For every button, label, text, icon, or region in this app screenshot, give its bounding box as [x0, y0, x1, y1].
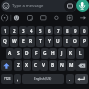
button[interactable]: Type a message: [12, 0, 62, 12]
button[interactable]: ?123: [1, 74, 13, 84]
button[interactable]: 7: [54, 26, 62, 35]
button[interactable]: Z: [14, 60, 22, 71]
staticText: English (US): [34, 77, 52, 81]
button[interactable]: [51, 13, 61, 23]
staticText: B: [51, 62, 55, 69]
staticText: S: [17, 50, 20, 57]
staticText: 4: [30, 28, 33, 34]
staticText: ?123: [4, 77, 11, 81]
staticText: 1: [4, 28, 7, 34]
button[interactable]: [64, 0, 76, 12]
button[interactable]: O: [71, 36, 79, 47]
button[interactable]: 1: [1, 26, 9, 35]
staticText: 2: [13, 28, 16, 34]
button[interactable]: Y: [45, 36, 53, 47]
button[interactable]: [38, 13, 48, 23]
button[interactable]: [0, 13, 10, 23]
button[interactable]: 9: [71, 26, 79, 35]
staticText: C: [34, 62, 38, 69]
button[interactable]: P: [80, 36, 88, 47]
button[interactable]: ,: [14, 74, 21, 84]
staticText: O: [73, 38, 77, 45]
staticText: K: [69, 50, 73, 57]
staticText: D: [25, 50, 29, 57]
button[interactable]: Q: [1, 36, 9, 47]
staticText: Y: [48, 38, 51, 45]
button[interactable]: C: [32, 60, 40, 71]
button[interactable]: 4: [27, 26, 35, 35]
button[interactable]: U: [54, 36, 62, 47]
staticText: N: [60, 62, 64, 69]
button[interactable]: N: [58, 60, 66, 71]
button[interactable]: G: [41, 48, 49, 59]
button[interactable]: 2: [10, 26, 18, 35]
staticText: R: [29, 38, 33, 45]
button[interactable]: V: [40, 60, 48, 71]
staticText: ,: [17, 76, 19, 82]
button[interactable]: T: [36, 36, 44, 47]
staticText: T: [39, 38, 42, 45]
button[interactable]: L: [76, 48, 84, 59]
staticText: F: [35, 50, 38, 57]
staticText: Z: [17, 62, 20, 69]
button[interactable]: A: [6, 48, 14, 59]
staticText: W: [12, 38, 17, 45]
button[interactable]: 5: [36, 26, 44, 35]
staticText: 5: [39, 28, 42, 34]
button[interactable]: [78, 13, 88, 23]
staticText: Type a message: [12, 3, 44, 9]
button[interactable]: K: [67, 48, 75, 59]
staticText: A: [8, 50, 12, 57]
button[interactable]: B: [49, 60, 57, 71]
staticText: J: [61, 50, 63, 57]
staticText: 0: [83, 28, 86, 34]
staticText: 6: [48, 28, 51, 34]
button[interactable]: 0: [80, 26, 88, 35]
button[interactable]: J: [58, 48, 66, 59]
button[interactable]: W: [10, 36, 18, 47]
staticText: 8: [66, 28, 69, 34]
button[interactable]: S: [14, 48, 22, 59]
button[interactable]: .: [66, 74, 74, 84]
staticText: G: [43, 50, 47, 57]
staticText: X: [25, 62, 29, 69]
button[interactable]: [1, 0, 77, 12]
staticText: E: [22, 38, 25, 45]
button[interactable]: [12, 13, 22, 23]
button[interactable]: [75, 60, 87, 71]
button[interactable]: [76, 0, 89, 12]
staticText: .: [69, 76, 71, 82]
button[interactable]: 3: [19, 26, 27, 35]
staticText: V: [42, 62, 46, 69]
button[interactable]: 8: [63, 26, 71, 35]
staticText: I: [66, 38, 68, 45]
button[interactable]: M: [67, 60, 75, 71]
staticText: 9: [74, 28, 77, 34]
button[interactable]: [1, 60, 12, 71]
staticText: P: [83, 38, 86, 45]
staticText: M: [69, 62, 74, 69]
staticText: Q: [3, 38, 7, 45]
button[interactable]: R: [27, 36, 35, 47]
button[interactable]: H: [49, 48, 57, 59]
button[interactable]: [75, 74, 88, 84]
button[interactable]: [65, 13, 75, 23]
button[interactable]: E: [19, 36, 27, 47]
button[interactable]: 6: [45, 26, 53, 35]
button[interactable]: English (US): [22, 74, 64, 84]
button[interactable]: I: [63, 36, 71, 47]
staticText: H: [51, 50, 55, 57]
button[interactable]: X: [23, 60, 31, 71]
staticText: U: [56, 38, 60, 45]
staticText: 3: [22, 28, 25, 34]
staticText: 7: [57, 28, 60, 34]
button[interactable]: [25, 13, 35, 23]
button[interactable]: D: [23, 48, 31, 59]
staticText: L: [79, 50, 82, 57]
button[interactable]: F: [32, 48, 40, 59]
